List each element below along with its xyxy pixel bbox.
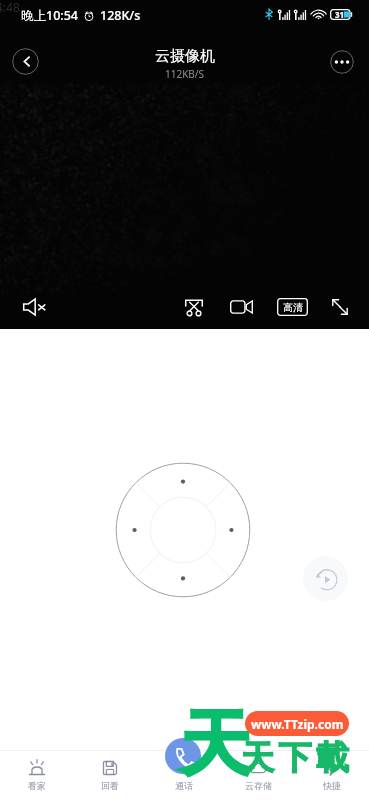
button[interactable]: 看家 [0, 750, 73, 799]
button[interactable]: Snapshot [179, 292, 209, 322]
button[interactable]: Record video [226, 292, 256, 322]
staticText: 天 [180, 700, 251, 789]
staticText: 快捷 [323, 780, 341, 791]
staticText: 高清 [283, 301, 303, 314]
staticText: 128K/s [100, 7, 141, 24]
button[interactable]: 回看 [73, 750, 147, 799]
staticText: 通话 [175, 780, 193, 791]
button[interactable]: 高清 [277, 298, 308, 316]
staticText: 112KB/S [165, 67, 205, 81]
staticText: 云存储 [245, 780, 272, 791]
button[interactable]: Replay [303, 556, 348, 601]
staticText: 回看 [101, 780, 119, 791]
staticText: 天下載 [241, 737, 354, 779]
staticText: www.TTzip.com [251, 716, 344, 732]
staticText: 云摄像机 [155, 47, 215, 66]
button[interactable]: Back [12, 48, 39, 75]
button[interactable]: Pan and tilt control [115, 462, 251, 598]
staticText: 31 [335, 9, 345, 20]
button[interactable]: Mute [18, 291, 50, 323]
button[interactable]: 快捷 [295, 750, 369, 799]
staticText: 看家 [28, 780, 46, 791]
button[interactable]: More options [330, 50, 354, 74]
button[interactable]: 云存储 [221, 750, 295, 799]
button[interactable]: Fullscreen [325, 292, 355, 322]
button[interactable]: 通话 [147, 750, 221, 799]
staticText: 晚上10:54 [21, 7, 79, 24]
staticText: 4:48 [0, 0, 20, 15]
